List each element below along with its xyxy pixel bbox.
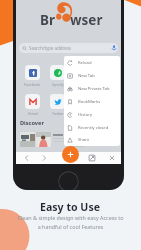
button[interactable]: Close: [108, 154, 116, 162]
staticText: New Tab: [78, 73, 95, 79]
staticText: Clean & simple design with easy Access t…: [17, 214, 124, 230]
button[interactable]: Search/type address: [19, 43, 118, 53]
button[interactable]: Reddit: [95, 94, 120, 116]
staticText: Reload: [78, 60, 92, 66]
button[interactable]: [36, 132, 51, 147]
staticText: Amazon: [76, 111, 90, 116]
staticText: Spotify: [52, 82, 64, 87]
staticText: Br: [40, 11, 56, 29]
staticText: Search/type address: [29, 45, 71, 51]
staticText: Recently closed: [78, 125, 109, 131]
button[interactable]: Spotify: [45, 65, 70, 87]
staticText: History: [78, 112, 93, 118]
button[interactable]: Back: [23, 154, 31, 162]
button[interactable]: Voice search: [110, 44, 118, 52]
staticText: New Private Tab: [78, 86, 110, 92]
staticText: BookMarks: [78, 99, 101, 105]
staticText: Facebook: [24, 82, 41, 87]
button[interactable]: Facebook: [20, 65, 45, 87]
button[interactable]: BookMarks: [64, 95, 120, 108]
button[interactable]: Amazon: [70, 94, 95, 116]
button[interactable]: New tab: [62, 146, 79, 163]
staticText: Twitter: [52, 111, 64, 116]
button[interactable]: Gmail: [20, 94, 45, 116]
button[interactable]: Reload: [64, 56, 120, 69]
button[interactable]: Youtube: [70, 65, 95, 87]
staticText: wser: [70, 11, 103, 29]
button[interactable]: New Private Tab: [64, 82, 120, 95]
button[interactable]: Share: [64, 134, 120, 146]
button[interactable]: Forward: [40, 154, 48, 162]
button[interactable]: New Tab: [64, 69, 120, 82]
staticText: Easy to Use: [40, 200, 101, 214]
button[interactable]: Recently closed: [64, 121, 120, 134]
button[interactable]: [70, 132, 85, 147]
button[interactable]: Tabs: [88, 154, 96, 162]
staticText: Share: [78, 137, 90, 143]
button[interactable]: [20, 132, 35, 147]
button[interactable]: Twitter: [45, 94, 70, 116]
staticText: Gmail: [28, 111, 38, 116]
staticText: Discover: [20, 119, 44, 127]
button[interactable]: History: [64, 108, 120, 121]
